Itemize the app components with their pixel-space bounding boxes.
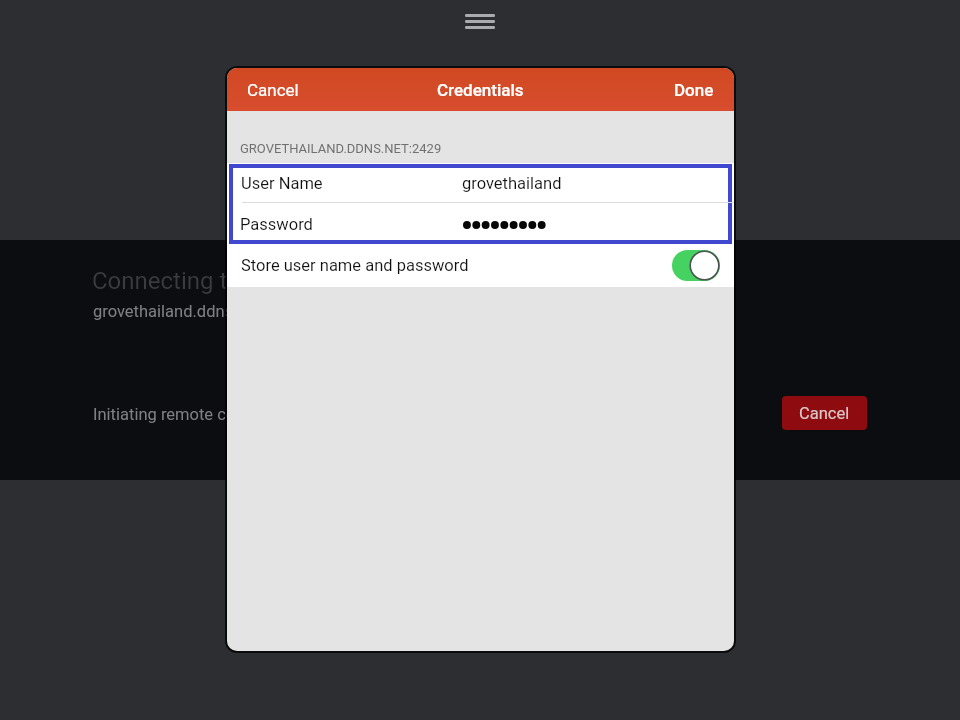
- staticText: User Name: [241, 174, 323, 193]
- staticText: Password: [240, 215, 313, 234]
- button[interactable]: Done: [665, 73, 723, 107]
- staticText: grovethailand: [462, 174, 562, 193]
- staticText: Cancel: [799, 404, 850, 423]
- button[interactable]: Cancel: [238, 73, 308, 107]
- button[interactable]: Password: [233, 203, 728, 238]
- staticText: Done: [674, 80, 714, 100]
- staticText: GROVETHAILAND.DDNS.NET:2429: [240, 141, 442, 156]
- staticText: Connecting to: [92, 267, 241, 295]
- staticText: Initiating remote connection…: [93, 405, 310, 424]
- staticText: Credentials: [437, 80, 524, 100]
- button[interactable]: Menu: [465, 11, 495, 32]
- button[interactable]: Store user name and password: [672, 250, 720, 281]
- button[interactable]: Cancel: [782, 396, 867, 430]
- button[interactable]: Store user name and password: [227, 244, 734, 287]
- staticText: Store user name and password: [241, 256, 469, 275]
- staticText: Cancel: [247, 80, 299, 100]
- button[interactable]: User Name: [233, 168, 728, 202]
- staticText: grovethailand.ddns.net:2429: [93, 302, 302, 321]
